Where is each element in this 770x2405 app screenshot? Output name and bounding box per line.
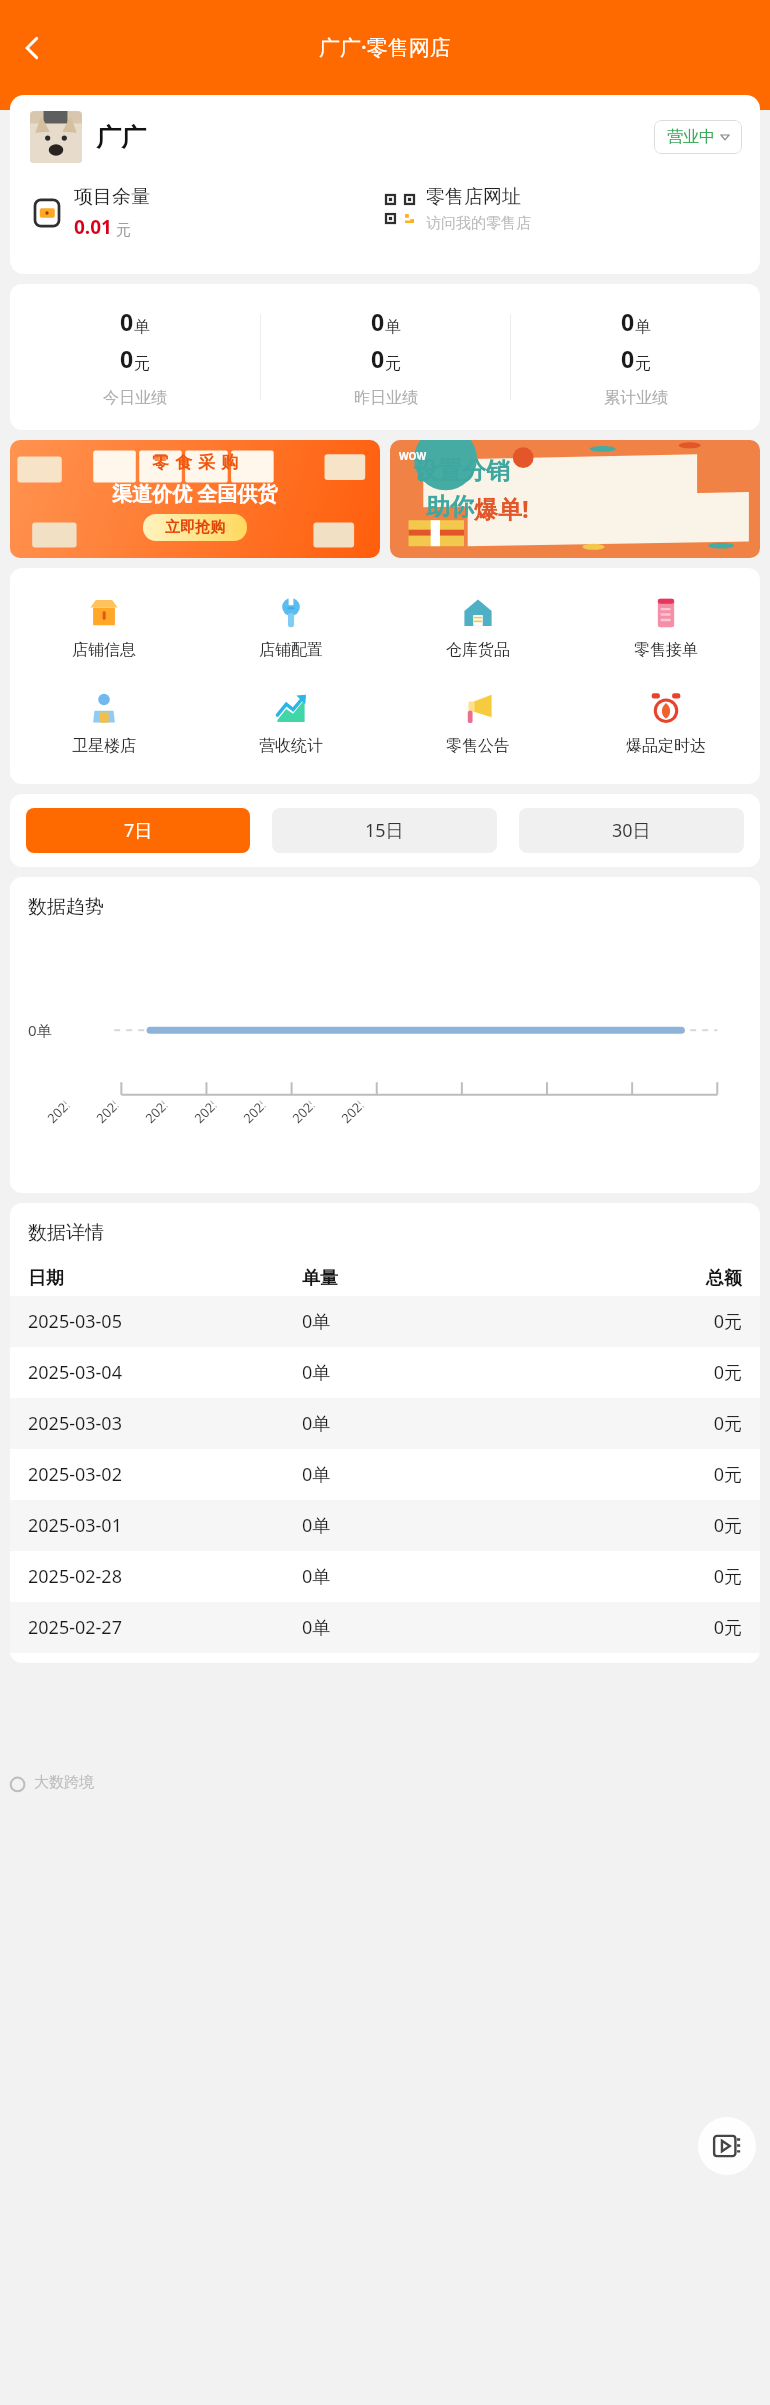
staticText: 爆单! — [474, 492, 529, 525]
staticText: 数据趋势 — [28, 895, 104, 919]
staticText: 2025-02-27 — [43, 1097, 73, 1127]
button[interactable]: 0 — [261, 306, 510, 408]
staticText: 0元 — [522, 1462, 742, 1487]
staticText: 2025-03-03 — [239, 1097, 269, 1127]
staticText: 0元 — [522, 1360, 742, 1385]
staticText: 日期 — [28, 1267, 302, 1290]
button[interactable]: WOW — [390, 440, 760, 558]
button[interactable]: 2025-02-27 — [10, 1602, 760, 1653]
staticText: 0 — [371, 306, 385, 337]
button[interactable]: 0 — [511, 306, 760, 408]
staticText: 2025-03-05 — [28, 1309, 302, 1334]
staticText: 累计业绩 — [604, 388, 668, 408]
staticText: 0 — [621, 306, 635, 337]
staticText: 店铺信息 — [72, 640, 136, 660]
staticText: 昨日业绩 — [354, 388, 418, 408]
staticText: 元 — [635, 354, 651, 374]
staticText: 立即抢购 — [165, 518, 225, 537]
staticText: 30日 — [612, 818, 651, 843]
button[interactable]: Video — [698, 2117, 756, 2175]
staticText: 2025-02-28 — [28, 1564, 302, 1589]
staticText: 0元 — [522, 1564, 742, 1589]
staticText: WOW — [399, 449, 427, 463]
button[interactable]: 营业中 — [654, 120, 742, 154]
staticText: 元 — [385, 354, 401, 374]
staticText: 0元 — [522, 1513, 742, 1538]
staticText: 项目余量 — [74, 185, 150, 209]
button[interactable]: 营收统计 — [197, 682, 384, 766]
button[interactable]: 店铺配置 — [197, 586, 384, 670]
button[interactable]: 店铺信息 — [10, 586, 197, 670]
staticText: 2025-02-27 — [28, 1615, 302, 1640]
staticText: 0单 — [302, 1309, 522, 1334]
staticText: 0.01 — [74, 214, 112, 240]
button[interactable]: 零售公告 — [384, 682, 572, 766]
staticText: 广广 — [96, 122, 146, 153]
staticText: 7日 — [124, 818, 153, 843]
staticText: 营业中 — [667, 127, 715, 147]
staticText: 卫星楼店 — [72, 736, 136, 756]
staticText: 总额 — [522, 1267, 742, 1290]
staticText: 2025-03-02 — [190, 1097, 220, 1127]
staticText: 15日 — [365, 818, 404, 843]
button[interactable]: 2025-03-05 — [10, 1296, 760, 1347]
staticText: 数据详情 — [28, 1221, 104, 1245]
staticText: 0单 — [28, 1020, 52, 1040]
staticText: 0 — [120, 343, 134, 374]
staticText: 零售店网址 — [426, 185, 521, 209]
staticText: 2025-03-05 — [337, 1097, 367, 1127]
staticText: 0 — [621, 343, 635, 374]
button[interactable]: 2025-03-04 — [10, 1347, 760, 1398]
button[interactable]: Back — [4, 20, 60, 76]
button[interactable]: 卫星楼店 — [10, 682, 197, 766]
staticText: 元 — [116, 221, 131, 240]
staticText: 2025-03-02 — [28, 1462, 302, 1487]
staticText: 单量 — [302, 1267, 522, 1290]
button[interactable]: 2025-03-01 — [10, 1500, 760, 1551]
staticText: 0元 — [522, 1309, 742, 1334]
staticText: 助你 — [426, 492, 474, 522]
button[interactable]: 30日 — [519, 808, 744, 853]
button[interactable]: 仓库货品 — [384, 586, 572, 670]
button[interactable]: 0 — [10, 306, 260, 408]
button[interactable]: 项目余量 — [32, 185, 386, 240]
button[interactable]: 爆品定时达 — [572, 682, 760, 766]
staticText: 2025-03-01 — [141, 1097, 171, 1127]
staticText: 零 — [152, 452, 169, 473]
staticText: 0单 — [302, 1411, 522, 1436]
button[interactable]: 2025-03-02 — [10, 1449, 760, 1500]
staticText: 2025-03-01 — [28, 1513, 302, 1538]
staticText: 2025-03-03 — [28, 1411, 302, 1436]
button[interactable]: 零售接单 — [572, 586, 760, 670]
staticText: 2025-03-04 — [28, 1360, 302, 1385]
staticText: 单 — [635, 317, 651, 337]
staticText: 单 — [134, 317, 150, 337]
staticText: 0 — [120, 306, 134, 337]
staticText: 采 — [198, 452, 215, 473]
button[interactable]: 7日 — [26, 808, 250, 853]
button[interactable]: 2025-03-03 — [10, 1398, 760, 1449]
staticText: 0单 — [302, 1360, 522, 1385]
staticText: 元 — [134, 354, 150, 374]
staticText: 仓库货品 — [446, 640, 510, 660]
button[interactable]: 15日 — [272, 808, 497, 853]
staticText: 设置分销 — [414, 456, 510, 486]
staticText: 0单 — [302, 1564, 522, 1589]
staticText: 大数跨境 — [34, 1773, 94, 1792]
staticText: 0单 — [302, 1462, 522, 1487]
staticText: 0单 — [302, 1615, 522, 1640]
staticText: 广广·零售网店 — [319, 33, 451, 62]
staticText: 渠道价优 全国供货 — [112, 480, 278, 507]
staticText: 食 — [175, 452, 192, 473]
staticText: 今日业绩 — [103, 388, 167, 408]
button[interactable]: 零售店网址 — [386, 185, 740, 233]
staticText: 0元 — [522, 1615, 742, 1640]
staticText: 0 — [371, 343, 385, 374]
staticText: 营收统计 — [259, 736, 323, 756]
button[interactable]: 零 — [10, 440, 380, 558]
staticText: 0元 — [522, 1411, 742, 1436]
button[interactable]: 2025-02-28 — [10, 1551, 760, 1602]
staticText: 单 — [385, 317, 401, 337]
staticText: 2025-02-28 — [92, 1097, 122, 1127]
staticText: 访问我的零售店 — [426, 214, 531, 233]
